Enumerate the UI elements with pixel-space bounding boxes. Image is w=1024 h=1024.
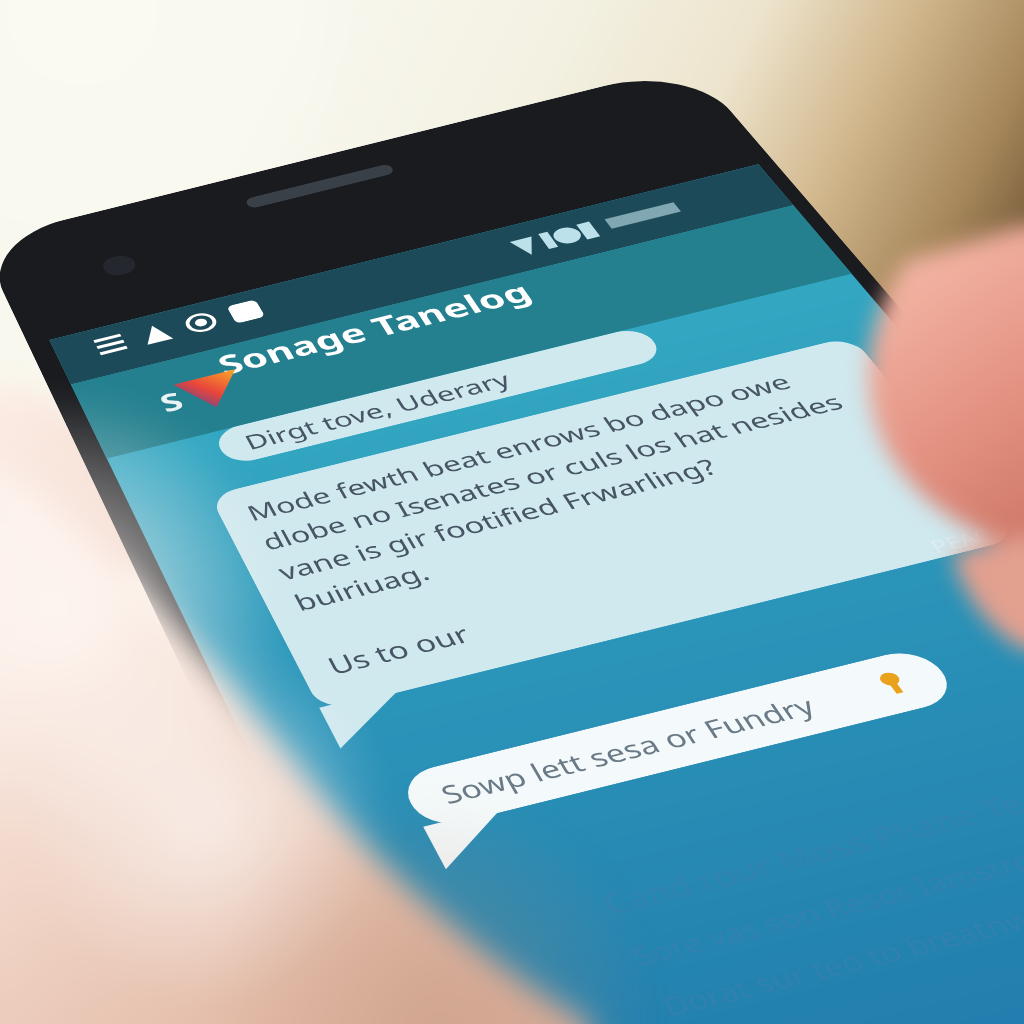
staticText: Mode fewth beat enrows bo dapo owe dlobe…	[192, 774, 1024, 1024]
button[interactable]: Stop	[321, 325, 369, 373]
button[interactable]: Dirgt tove, Uderary	[201, 610, 883, 694]
button[interactable]: Menu	[97, 324, 147, 374]
staticText: Dirgt tove, Uderary	[241, 621, 654, 684]
button[interactable]: Mode fewth beat enrows bo dapo owe dlobe…	[152, 746, 1024, 1024]
other: Signal	[173, 325, 221, 373]
other: Sync	[247, 325, 295, 373]
staticText: S	[151, 478, 183, 557]
staticText: Sonage Tanelog	[263, 420, 763, 507]
